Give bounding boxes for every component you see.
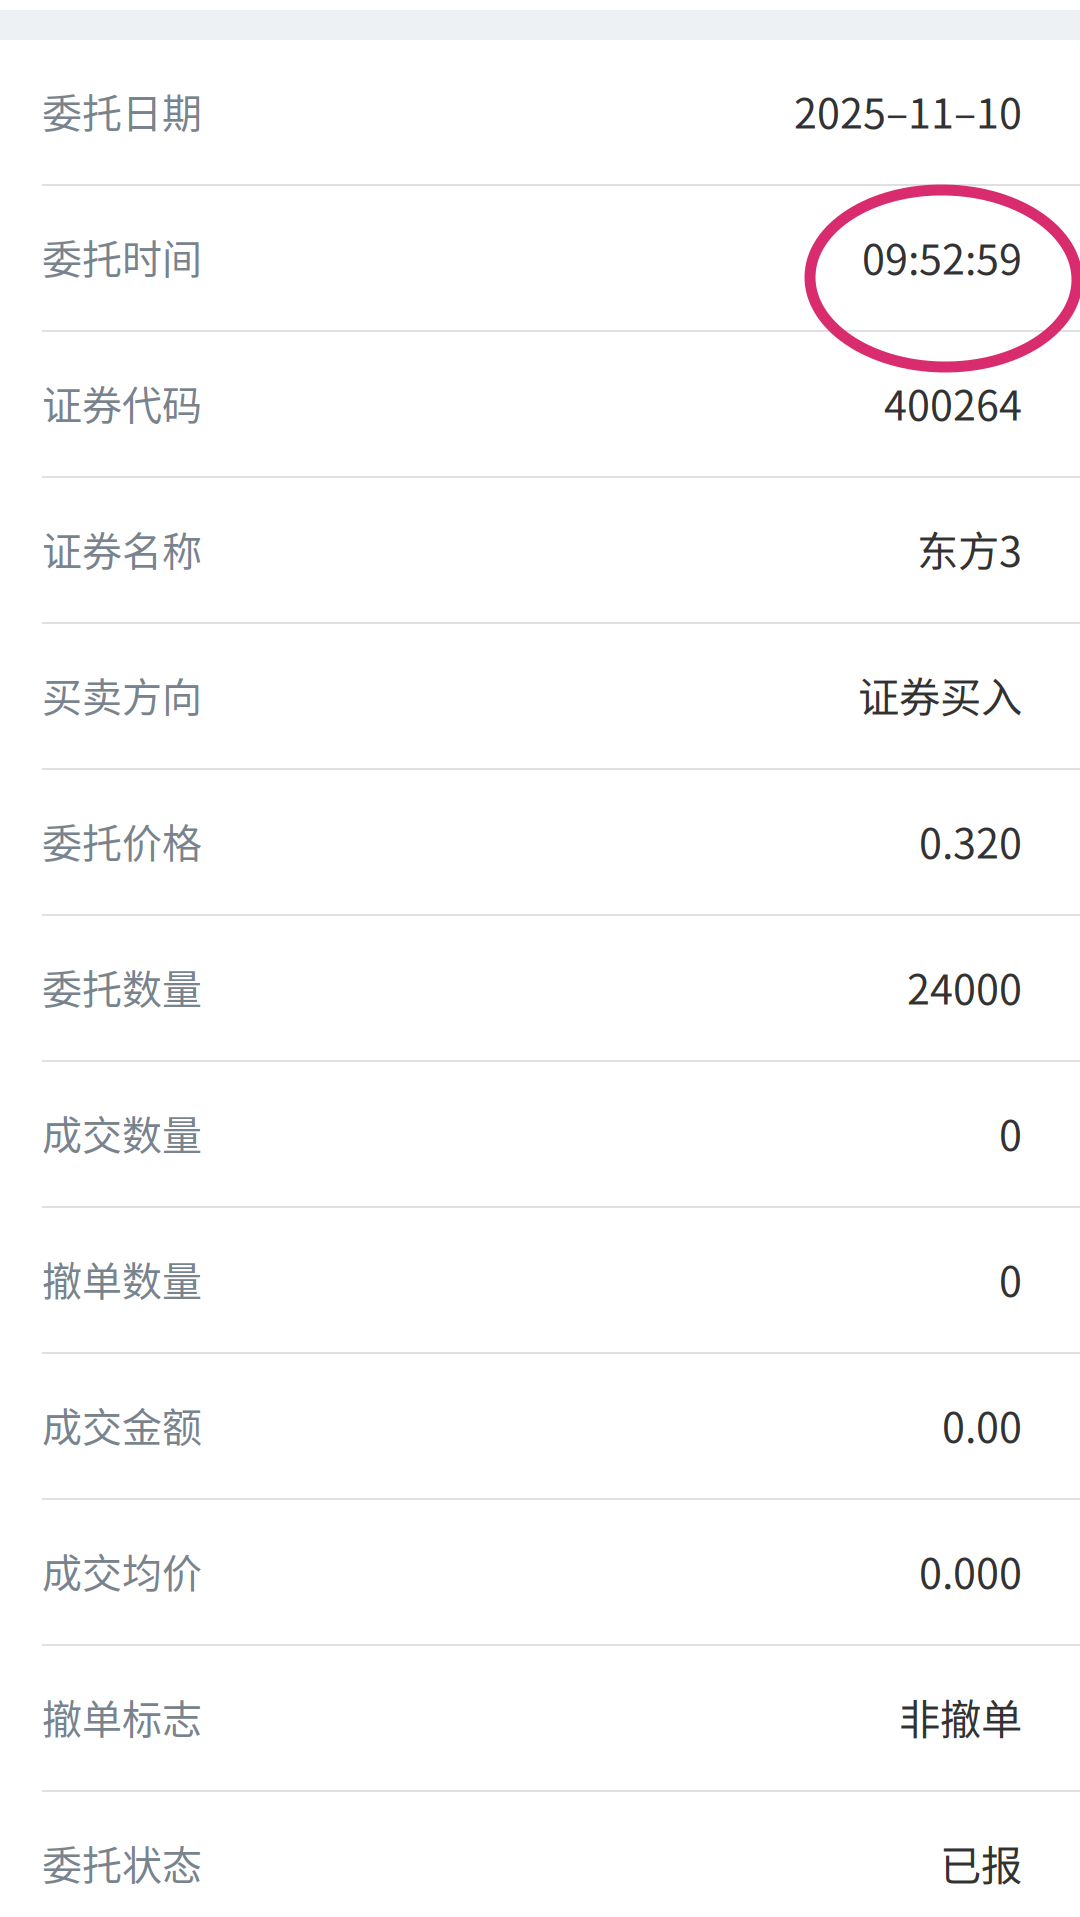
staticText: 撤单数量 bbox=[42, 1249, 202, 1307]
button[interactable]: 证券代码 bbox=[0, 332, 1080, 478]
button[interactable]: 撤单数量 bbox=[0, 1208, 1080, 1354]
staticText: 委托数量 bbox=[42, 957, 202, 1015]
staticText: 2025–11–10 bbox=[794, 81, 1022, 140]
staticText: 撤单标志 bbox=[42, 1687, 202, 1745]
staticText: 证券名称 bbox=[42, 519, 202, 577]
button[interactable]: 委托数量 bbox=[0, 916, 1080, 1062]
staticText: 09:52:59 bbox=[862, 227, 1022, 286]
staticText: 0.320 bbox=[919, 811, 1022, 870]
staticText: 成交均价 bbox=[42, 1541, 202, 1599]
button[interactable]: 委托时间 bbox=[0, 186, 1080, 332]
staticText: 证券代码 bbox=[42, 373, 202, 431]
staticText: 委托价格 bbox=[42, 811, 202, 869]
staticText: 400264 bbox=[884, 373, 1022, 432]
staticText: 证券买入 bbox=[858, 665, 1022, 724]
button[interactable]: 买卖方向 bbox=[0, 624, 1080, 770]
button[interactable]: 撤单标志 bbox=[0, 1646, 1080, 1792]
staticText: 东方3 bbox=[917, 519, 1022, 578]
staticText: 24000 bbox=[907, 957, 1022, 1016]
button[interactable]: 成交均价 bbox=[0, 1500, 1080, 1646]
staticText: 已报 bbox=[940, 1833, 1022, 1892]
staticText: 非撤单 bbox=[899, 1687, 1022, 1746]
staticText: 委托时间 bbox=[42, 227, 202, 285]
staticText: 成交金额 bbox=[42, 1395, 202, 1453]
button[interactable]: 成交金额 bbox=[0, 1354, 1080, 1500]
staticText: 买卖方向 bbox=[42, 665, 202, 723]
staticText: 委托日期 bbox=[42, 81, 202, 139]
button[interactable]: 委托价格 bbox=[0, 770, 1080, 916]
staticText: 成交数量 bbox=[42, 1103, 202, 1161]
button[interactable]: 委托状态 bbox=[0, 1792, 1080, 1917]
staticText: 委托状态 bbox=[42, 1833, 202, 1891]
staticText: 0.000 bbox=[919, 1541, 1022, 1600]
staticText: 0 bbox=[999, 1249, 1022, 1308]
staticText: 0.00 bbox=[942, 1395, 1022, 1454]
button[interactable]: 成交数量 bbox=[0, 1062, 1080, 1208]
button[interactable]: 委托日期 bbox=[0, 40, 1080, 186]
button[interactable]: 证券名称 bbox=[0, 478, 1080, 624]
staticText: 0 bbox=[999, 1103, 1022, 1162]
